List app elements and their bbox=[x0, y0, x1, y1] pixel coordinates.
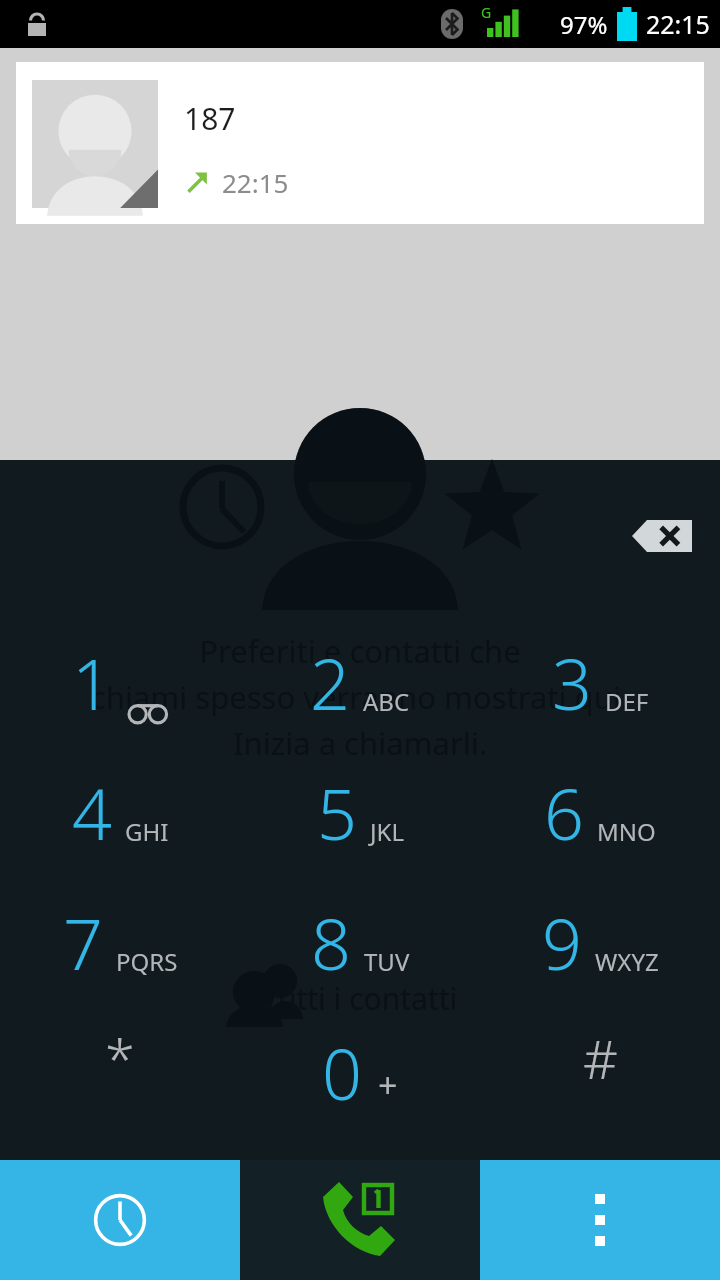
button[interactable]: # bbox=[480, 1007, 720, 1137]
staticText: WXYZ bbox=[595, 945, 659, 978]
button[interactable]: 2 bbox=[240, 617, 480, 747]
staticText: 3 bbox=[552, 635, 592, 730]
staticText: 6 bbox=[544, 765, 584, 860]
button[interactable]: 4 bbox=[0, 747, 240, 877]
button[interactable]: Recents bbox=[0, 1160, 240, 1280]
staticText: 187 bbox=[184, 98, 236, 139]
staticText: * bbox=[105, 1021, 135, 1095]
button[interactable]: More options bbox=[480, 1160, 720, 1280]
staticText: 5 bbox=[317, 765, 357, 860]
staticText: DEF bbox=[605, 685, 649, 718]
button[interactable]: 9 bbox=[480, 877, 720, 1007]
staticText: # bbox=[583, 1021, 618, 1095]
staticText: PQRS bbox=[116, 945, 178, 978]
button[interactable]: 7 bbox=[0, 877, 240, 1007]
staticText: + bbox=[378, 1062, 398, 1108]
staticText: MNO bbox=[597, 815, 656, 848]
staticText: 4 bbox=[72, 765, 112, 860]
staticText: 2 bbox=[310, 635, 350, 730]
button[interactable]: 0 bbox=[240, 1007, 480, 1137]
staticText: TUV bbox=[364, 945, 410, 978]
staticText: 0 bbox=[322, 1025, 362, 1120]
button[interactable]: * bbox=[0, 1007, 240, 1137]
button[interactable]: 187 bbox=[16, 62, 704, 224]
staticText: JKL bbox=[370, 815, 404, 848]
staticText: 8 bbox=[311, 895, 351, 990]
button[interactable]: 3 bbox=[480, 617, 720, 747]
button[interactable]: 5 bbox=[240, 747, 480, 877]
staticText: GHI bbox=[125, 815, 169, 848]
staticText: ABC bbox=[363, 685, 410, 718]
staticText: 9 bbox=[542, 895, 582, 990]
button[interactable]: Dialpad bbox=[240, 1160, 480, 1280]
button[interactable]: 8 bbox=[240, 877, 480, 1007]
staticText: 22:15 bbox=[222, 165, 289, 200]
staticText: 97% bbox=[560, 8, 608, 41]
button[interactable]: Backspace bbox=[608, 498, 716, 574]
staticText: 7 bbox=[63, 895, 103, 990]
button[interactable]: 6 bbox=[480, 747, 720, 877]
staticText: G bbox=[481, 3, 492, 22]
button[interactable]: 1 bbox=[0, 617, 240, 747]
staticText: Preferiti e contatti che chiami spesso v… bbox=[16, 630, 704, 764]
staticText: 1 bbox=[72, 635, 112, 730]
staticText: 22:15 bbox=[646, 7, 710, 41]
